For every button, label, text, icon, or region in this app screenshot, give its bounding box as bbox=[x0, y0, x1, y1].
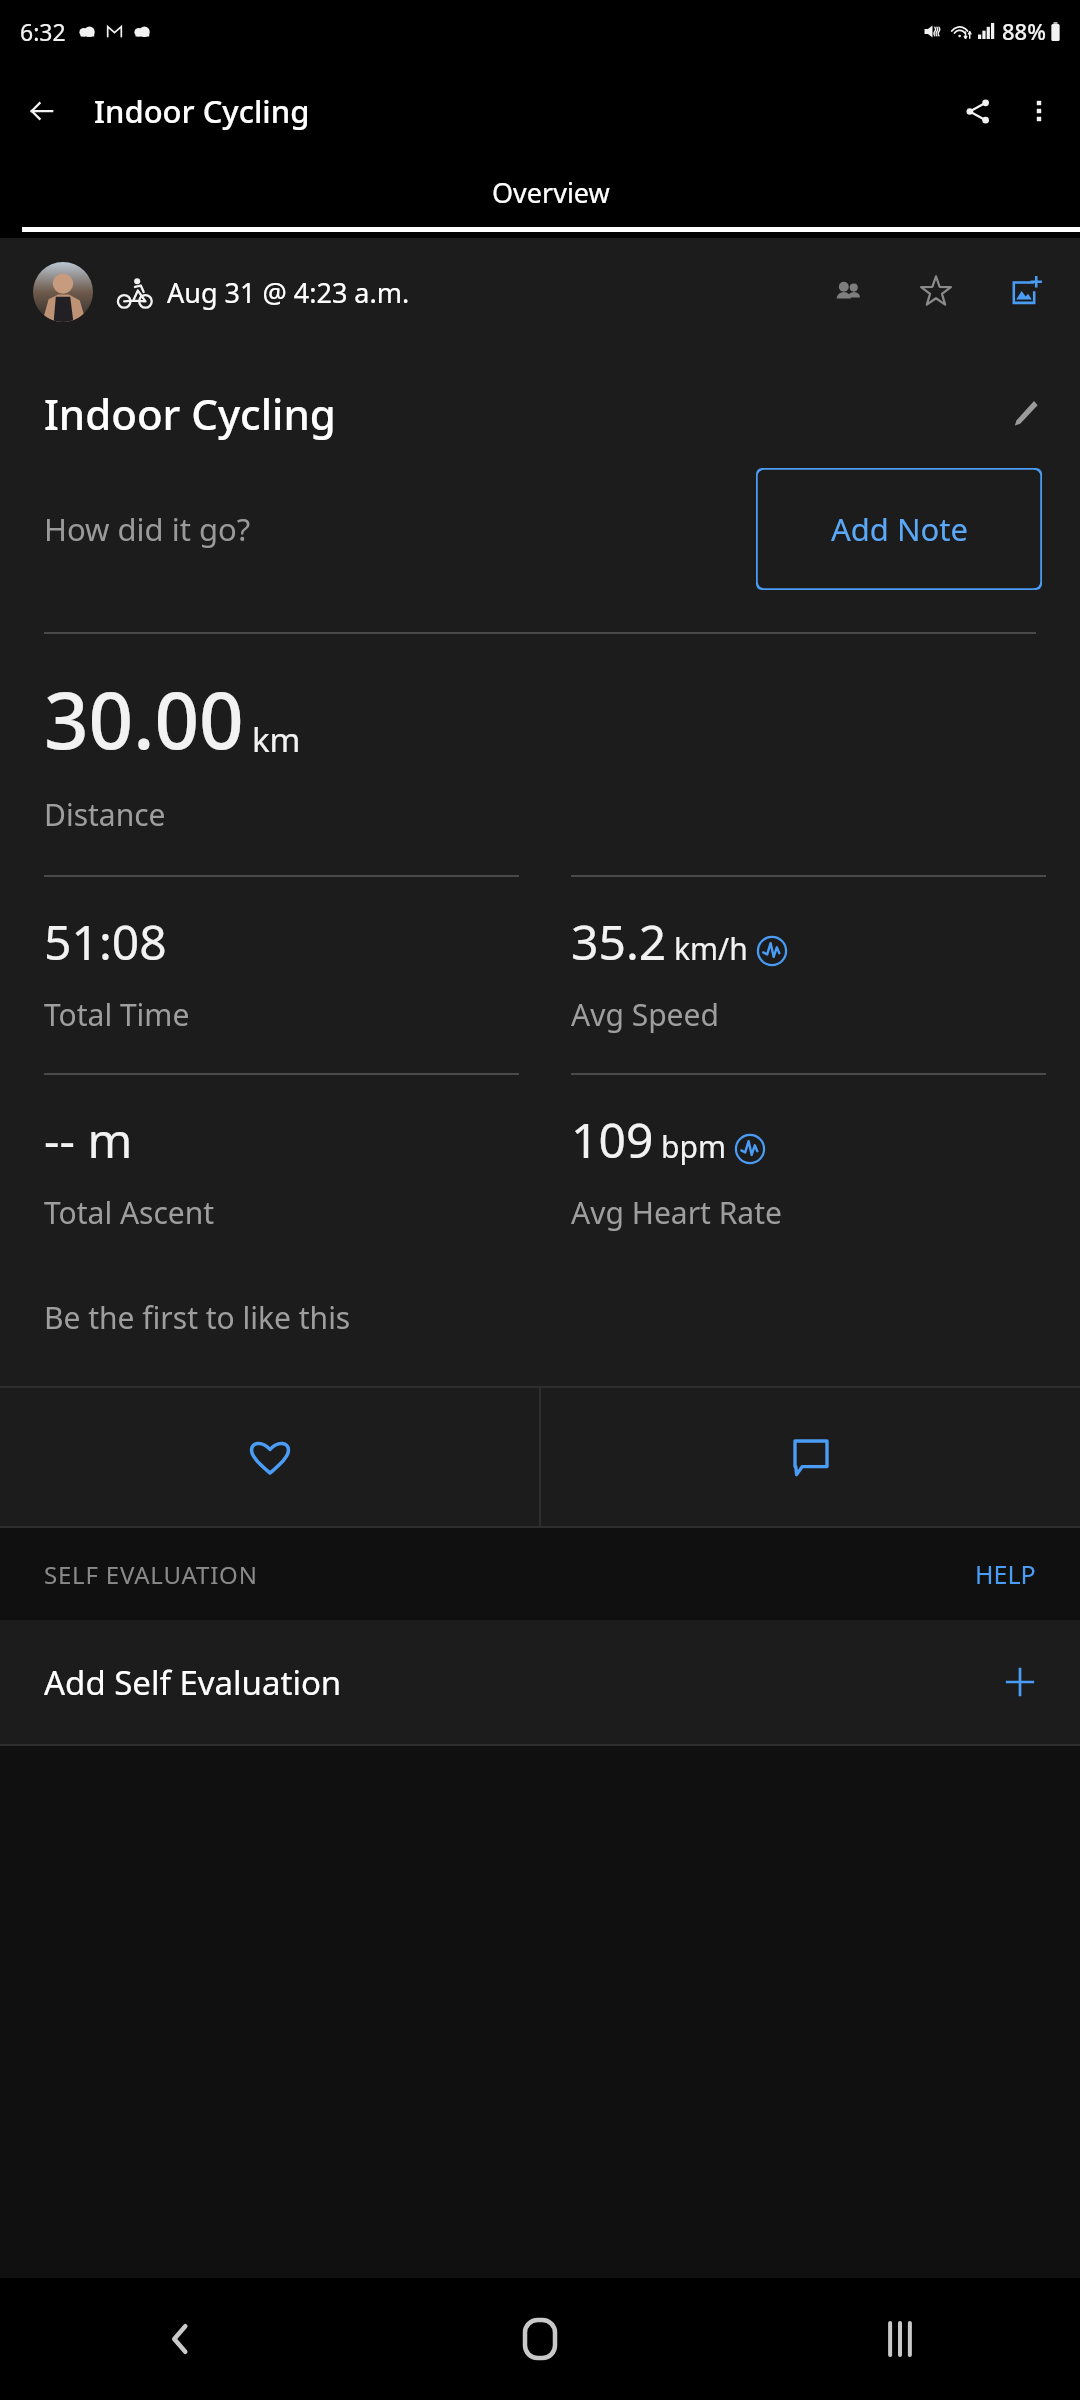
button[interactable]: Add photo bbox=[988, 256, 1060, 328]
staticText: 88% bbox=[1002, 16, 1046, 46]
button[interactable]: 109 bbox=[571, 1073, 1046, 1271]
button[interactable]: Back bbox=[14, 83, 70, 139]
staticText: Avg Heart Rate bbox=[571, 1192, 782, 1233]
button[interactable]: Overview bbox=[22, 160, 1080, 238]
button[interactable]: -- m bbox=[44, 1073, 519, 1271]
staticText: Avg Speed bbox=[571, 994, 719, 1035]
staticText: 109 bbox=[571, 1107, 654, 1172]
staticText: Add Note bbox=[831, 508, 968, 550]
button[interactable]: Share bbox=[946, 80, 1008, 142]
button[interactable]: Home bbox=[360, 2278, 720, 2400]
staticText: Indoor Cycling bbox=[44, 385, 336, 442]
staticText: Overview bbox=[492, 174, 610, 211]
button[interactable]: Edit bbox=[992, 380, 1058, 446]
staticText: Be the first to like this bbox=[44, 1297, 351, 1338]
button[interactable]: 51:08 bbox=[44, 875, 519, 1073]
button[interactable]: HELP bbox=[965, 1549, 1046, 1599]
staticText: km bbox=[252, 717, 301, 762]
staticText: HELP bbox=[975, 1557, 1036, 1591]
staticText: Total Time bbox=[44, 994, 190, 1035]
staticText: 35.2 bbox=[571, 909, 667, 974]
button[interactable]: Participants bbox=[812, 256, 884, 328]
button[interactable]: Back bbox=[0, 2278, 360, 2400]
button[interactable]: 35.2 bbox=[571, 875, 1046, 1073]
staticText: Aug 31 @ 4:23 a.m. bbox=[167, 274, 410, 311]
staticText: Distance bbox=[44, 794, 166, 835]
staticText: Add Self Evaluation bbox=[44, 1660, 342, 1705]
staticText: bpm bbox=[661, 1126, 726, 1167]
staticText: Indoor Cycling bbox=[94, 90, 310, 132]
button[interactable]: Comment bbox=[541, 1388, 1080, 1526]
staticText: 6:32 bbox=[20, 16, 66, 47]
button[interactable]: Aug 31 @ 4:23 a.m. bbox=[0, 238, 1080, 346]
staticText: SELF EVALUATION bbox=[44, 1558, 258, 1591]
button[interactable]: More options bbox=[1008, 80, 1070, 142]
staticText: 30.00 bbox=[44, 666, 244, 772]
button[interactable]: Favorite bbox=[900, 256, 972, 328]
staticText: km/h bbox=[674, 928, 748, 969]
button[interactable]: Add Note bbox=[756, 468, 1042, 590]
staticText: How did it go? bbox=[44, 508, 251, 550]
button[interactable]: Like bbox=[0, 1388, 539, 1526]
staticText: Total Ascent bbox=[44, 1192, 215, 1233]
button[interactable]: Add Self Evaluation bbox=[0, 1620, 1080, 1744]
staticText: -- m bbox=[44, 1107, 133, 1172]
button[interactable]: Recent apps bbox=[720, 2278, 1080, 2400]
button[interactable]: Add self evaluation bbox=[990, 1652, 1050, 1712]
staticText: 51:08 bbox=[44, 909, 167, 974]
